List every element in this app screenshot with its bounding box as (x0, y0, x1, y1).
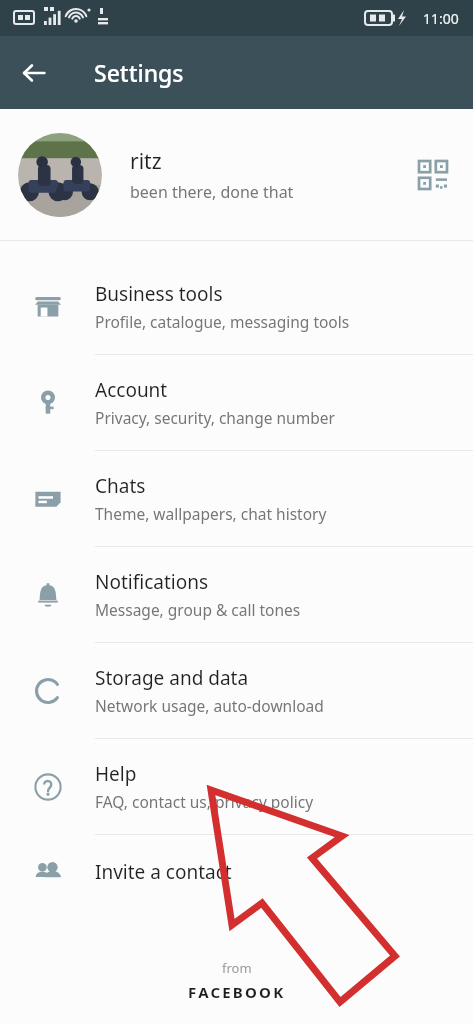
staticText: Storage and data (95, 665, 249, 691)
button[interactable]: Business tools (0, 259, 473, 354)
staticText: 11:00 (423, 9, 459, 28)
button[interactable]: Account (0, 355, 473, 450)
staticText: Account (95, 377, 168, 403)
staticText: FACEBOOK (188, 982, 286, 1002)
staticText: from (222, 959, 252, 977)
button[interactable]: Invite a contact (0, 835, 473, 909)
button[interactable]: Back (10, 49, 58, 97)
staticText: Privacy, security, change number (95, 407, 335, 428)
staticText: FAQ, contact us, privacy policy (95, 791, 314, 812)
staticText: Chats (95, 473, 146, 499)
staticText: Network usage, auto-download (95, 695, 324, 716)
staticText: Help (95, 761, 137, 787)
button[interactable]: Help (0, 739, 473, 834)
staticText: Business tools (95, 281, 223, 307)
staticText: Message, group & call tones (95, 599, 301, 620)
button[interactable]: QR code (411, 153, 455, 197)
button[interactable]: ritz (0, 109, 473, 240)
button[interactable]: Chats (0, 451, 473, 546)
button[interactable]: Notifications (0, 547, 473, 642)
staticText: Settings (94, 57, 184, 88)
staticText: Theme, wallpapers, chat history (95, 503, 327, 524)
staticText: ritz (130, 147, 162, 176)
staticText: been there, done that (130, 181, 294, 203)
staticText: Invite a contact (95, 859, 232, 885)
staticText: Profile, catalogue, messaging tools (95, 311, 350, 332)
staticText: Notifications (95, 569, 209, 595)
button[interactable]: Storage and data (0, 643, 473, 738)
